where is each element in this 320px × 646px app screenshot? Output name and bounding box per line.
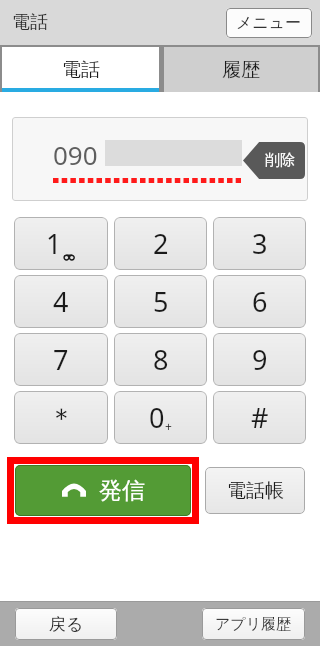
staticText: 0 [149,399,165,436]
button[interactable]: 履歴 [164,47,318,92]
staticText: 7 [53,341,69,378]
staticText: 8 [153,341,169,378]
button[interactable]: 6 [213,275,306,328]
staticText: ＊ [48,401,75,435]
button[interactable]: # [213,391,306,444]
button[interactable]: 発信 [15,465,191,516]
button[interactable]: 7 [14,333,108,386]
button[interactable]: 3 [213,217,306,270]
staticText: 電話帳 [227,479,284,503]
button[interactable]: アプリ履歴 [202,608,305,640]
staticText: 5 [153,283,169,320]
staticText: 電話 [62,58,100,82]
button[interactable]: 戻る [15,608,117,640]
staticText: 3 [252,225,268,262]
button[interactable]: ＊ [14,391,108,444]
staticText: 2 [153,225,169,262]
staticText: 削除 [265,151,295,170]
staticText: 090 [53,137,98,172]
staticText: アプリ履歴 [215,615,292,634]
button[interactable]: メニュー [226,8,312,38]
staticText: # [251,399,269,436]
staticText: 9 [252,341,268,378]
staticText: 履歴 [222,58,260,82]
staticText: + [165,418,172,434]
button[interactable]: 0 [114,391,207,444]
button[interactable]: 削除 [243,142,305,179]
staticText: 戻る [49,614,84,635]
staticText: メニュー [236,13,302,33]
button[interactable]: 4 [14,275,108,328]
staticText: 発信 [99,476,145,505]
button[interactable]: 8 [114,333,207,386]
button[interactable]: 9 [213,333,306,386]
staticText: 1 [46,225,62,262]
staticText: 電話 [12,11,48,34]
staticText: 6 [252,283,268,320]
button[interactable]: 電話 [2,47,159,92]
button[interactable]: 1 [14,217,108,270]
staticText: 4 [53,283,69,320]
button[interactable]: 電話帳 [205,467,305,514]
button[interactable]: 2 [114,217,207,270]
button[interactable]: 5 [114,275,207,328]
